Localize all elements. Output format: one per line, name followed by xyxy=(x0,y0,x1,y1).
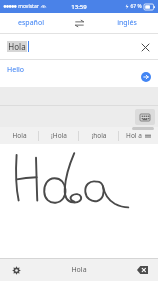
button[interactable]: Handwriting input area xyxy=(0,144,158,258)
button[interactable]: Swap languages xyxy=(62,13,96,33)
staticText: movistar xyxy=(18,3,39,10)
staticText: 13:59 xyxy=(71,3,87,11)
staticText: Hello xyxy=(7,65,24,75)
button[interactable]: Show keyboard xyxy=(135,109,155,125)
button[interactable]: ¡Hola xyxy=(39,127,78,144)
staticText: ¡Hola xyxy=(51,131,67,140)
button[interactable]: español xyxy=(0,13,62,33)
button[interactable]: Settings xyxy=(0,259,32,281)
button[interactable]: Hola xyxy=(0,127,38,144)
staticText: 67 % xyxy=(130,3,142,10)
button[interactable]: Backspace xyxy=(126,259,158,281)
staticText: inglés xyxy=(117,18,137,28)
button[interactable]: Open translation xyxy=(140,71,152,83)
button[interactable]: Hello xyxy=(0,60,158,87)
staticText: Hola xyxy=(12,131,27,140)
staticText: español xyxy=(18,18,44,28)
button[interactable]: inglés xyxy=(96,13,158,33)
button[interactable]: Clear text xyxy=(138,40,152,54)
staticText: Hola xyxy=(8,41,26,52)
staticText: Hola xyxy=(71,265,87,275)
staticText: Hol a xyxy=(126,131,142,140)
button[interactable]: Hol a xyxy=(119,127,158,144)
button[interactable]: ¡hola xyxy=(79,127,118,144)
button[interactable]: Hola xyxy=(0,34,158,59)
staticText: ¡hola xyxy=(91,131,107,140)
